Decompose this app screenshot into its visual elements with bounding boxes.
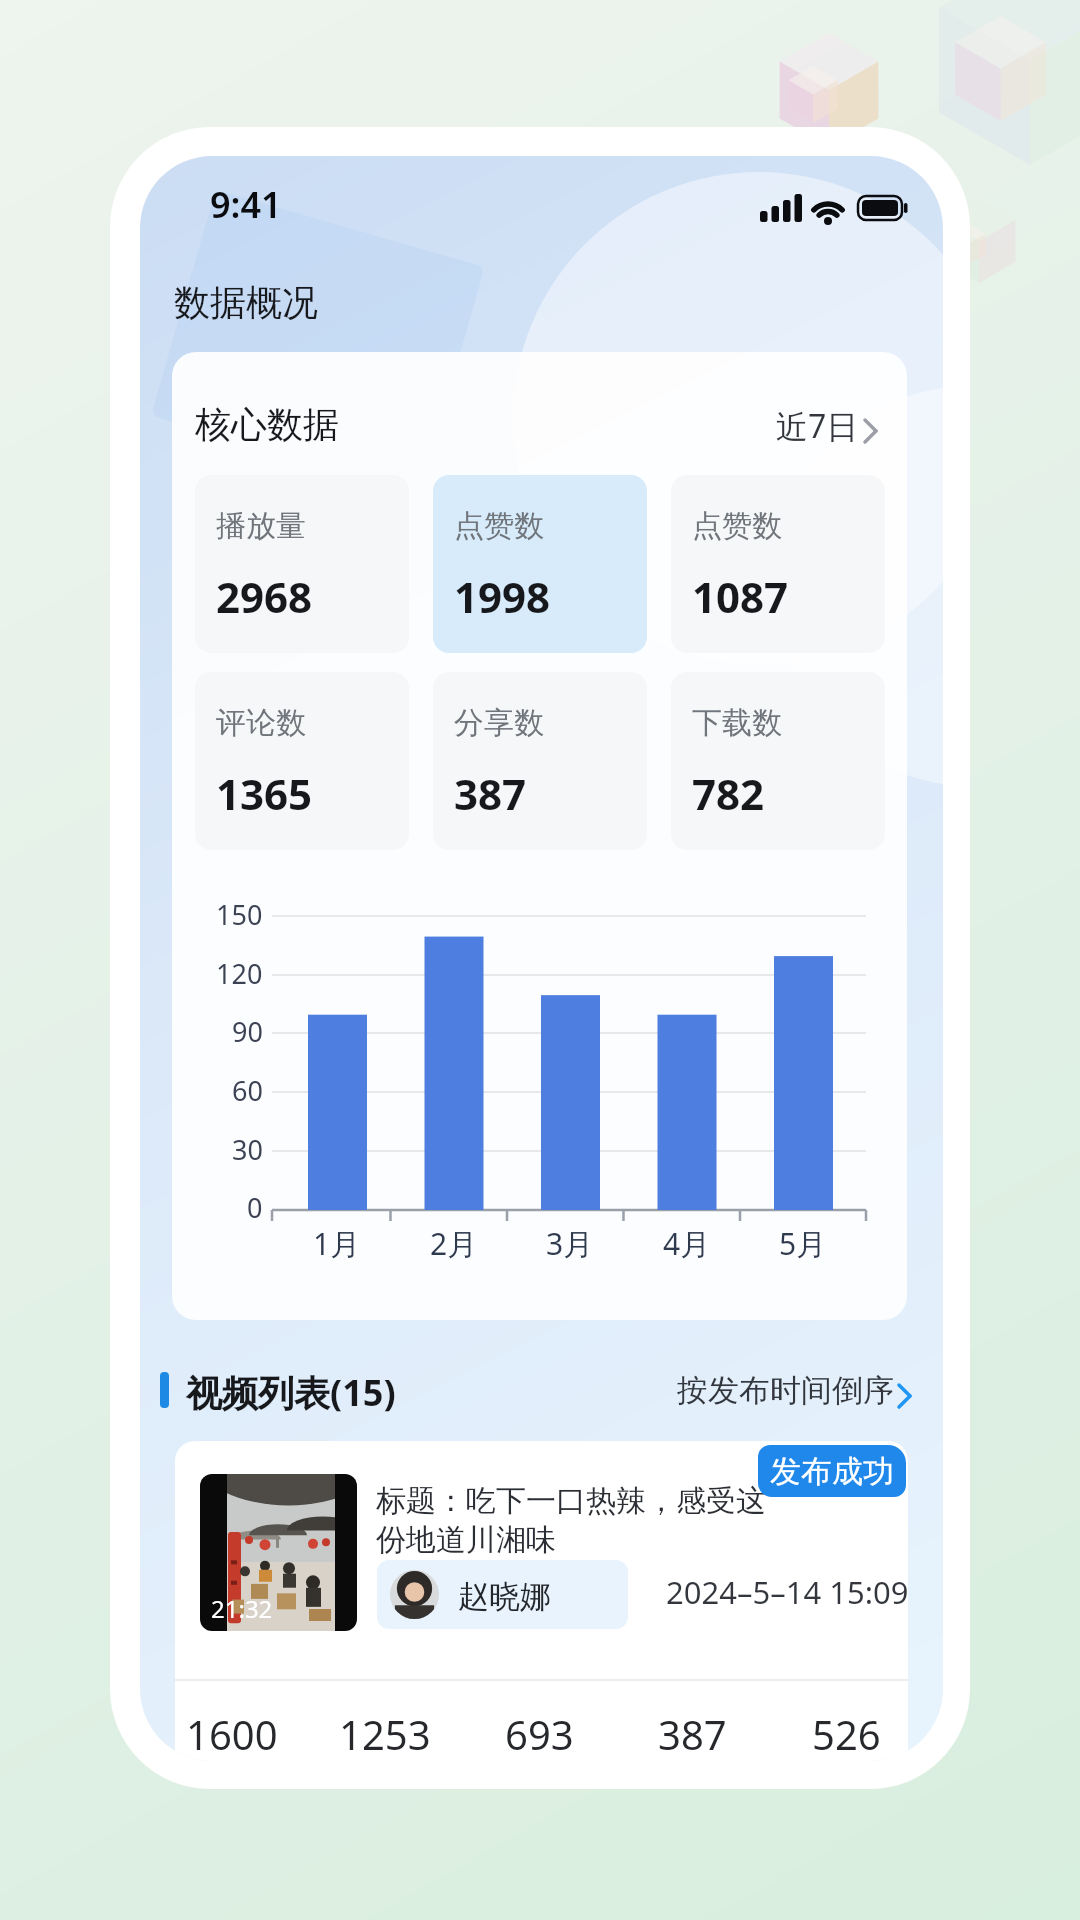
staticText: 份地道川湘味 — [376, 1521, 556, 1559]
button[interactable]: 赵晓娜 — [377, 1560, 628, 1629]
staticText: 下载数 — [692, 704, 782, 742]
button[interactable]: 发布成功 — [758, 1445, 906, 1497]
staticText: 2月 — [430, 1223, 478, 1264]
button[interactable]: 近7日 — [776, 404, 893, 448]
staticText: 发布成功 — [770, 1452, 894, 1491]
staticText: 150 — [216, 896, 263, 933]
button[interactable]: 评论数 — [195, 672, 409, 850]
staticText: 1600 — [186, 1707, 278, 1761]
staticText: 120 — [216, 955, 263, 992]
staticText: 1253 — [339, 1707, 431, 1761]
button[interactable]: 点赞数 — [433, 475, 647, 653]
staticText: 标题：吃下一口热辣，感受这 — [376, 1482, 766, 1520]
staticText: 数据概况 — [174, 280, 318, 325]
staticText: 点赞数 — [692, 507, 782, 545]
staticText: 387 — [454, 765, 527, 822]
staticText: 387 — [658, 1707, 727, 1761]
staticText: 526 — [812, 1707, 881, 1761]
staticText: 0 — [247, 1189, 263, 1226]
staticText: 2024–5–14 15:09 — [666, 1571, 908, 1613]
staticText: 5月 — [779, 1223, 827, 1264]
staticText: 评论数 — [216, 704, 306, 742]
staticText: 核心数据 — [195, 402, 339, 447]
staticText: 赵晓娜 — [458, 1577, 551, 1616]
staticText: 1365 — [216, 765, 313, 822]
staticText: 播放量 — [216, 507, 306, 545]
staticText: 分享数 — [454, 704, 544, 742]
staticText: 90 — [232, 1013, 263, 1050]
staticText: 9:41 — [210, 180, 282, 229]
staticText: 按发布时间倒序 — [677, 1371, 894, 1410]
staticText: 782 — [692, 765, 765, 822]
staticText: 30 — [232, 1131, 263, 1168]
staticText: 2968 — [216, 568, 313, 625]
staticText: 4月 — [663, 1223, 711, 1264]
staticText: 近7日 — [776, 404, 859, 448]
staticText: 点赞数 — [454, 507, 544, 545]
button[interactable]: 播放量 — [195, 475, 409, 653]
staticText: 693 — [505, 1707, 574, 1761]
button[interactable]: 按发布时间倒序 — [677, 1371, 926, 1410]
staticText: 60 — [232, 1072, 263, 1109]
staticText: 3月 — [546, 1223, 594, 1264]
staticText: 视频列表(15) — [186, 1368, 396, 1417]
button[interactable]: 点赞数 — [671, 475, 885, 653]
staticText: 1月 — [313, 1223, 361, 1264]
staticText: 1998 — [454, 568, 551, 625]
button[interactable]: 下载数 — [671, 672, 885, 850]
button[interactable]: 21:32 — [175, 1441, 908, 1761]
staticText: 1087 — [692, 568, 789, 625]
staticText: 21:32 — [211, 1592, 273, 1625]
button[interactable]: 分享数 — [433, 672, 647, 850]
